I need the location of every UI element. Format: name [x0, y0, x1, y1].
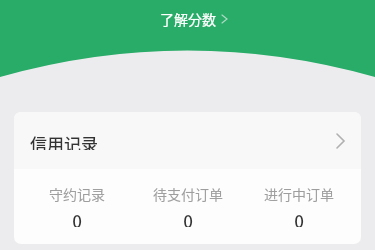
button[interactable]: 信用记录 [14, 112, 361, 169]
staticText: 0 [294, 208, 304, 227]
button[interactable]: 待支付订单 [132, 169, 243, 244]
staticText: 了解分数 [160, 9, 216, 29]
staticText: 守约记录 [49, 184, 105, 203]
button[interactable]: 了解分数 [148, 9, 227, 29]
staticText: 0 [72, 208, 82, 227]
other: 查看信用记录 [337, 134, 344, 148]
staticText: 信用记录 [30, 131, 98, 150]
staticText: 0 [183, 208, 193, 227]
staticText: 待支付订单 [153, 184, 223, 203]
button[interactable]: 守约记录 [21, 169, 132, 244]
staticText: 进行中订单 [264, 184, 334, 203]
button[interactable]: 进行中订单 [243, 169, 354, 244]
